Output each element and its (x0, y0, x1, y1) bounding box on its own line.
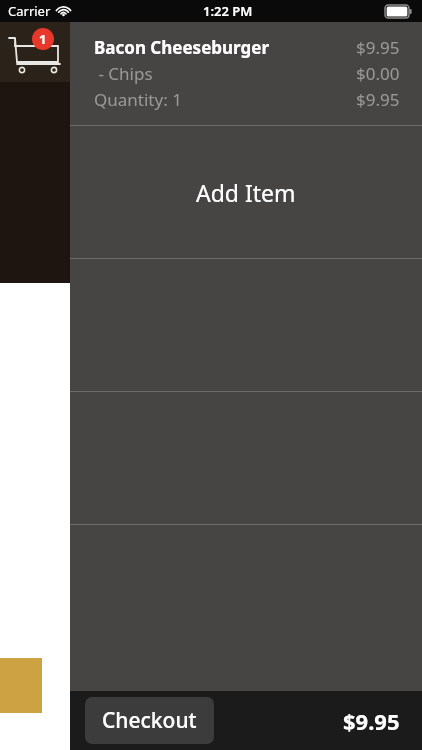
staticText: $9.95 (356, 88, 400, 111)
staticText: Bacon Cheeseburger (94, 36, 356, 59)
staticText: Checkout (102, 706, 197, 735)
button[interactable]: Bacon Cheeseburger (70, 22, 422, 125)
button[interactable]: Add Item (70, 126, 422, 258)
staticText: Carrier (8, 2, 51, 20)
staticText: $9.95 (343, 706, 400, 736)
staticText: $0.00 (356, 62, 400, 85)
staticText: Quantity: 1 (94, 88, 356, 111)
button[interactable]: Cart, 1 item (0, 0, 70, 82)
staticText: - Chips (94, 62, 356, 85)
staticText: $9.95 (356, 36, 400, 59)
button[interactable]: Checkout (85, 697, 214, 744)
staticText: 1 (39, 30, 47, 48)
staticText: Add Item (196, 177, 296, 208)
staticText: 1:22 PM (203, 2, 253, 20)
